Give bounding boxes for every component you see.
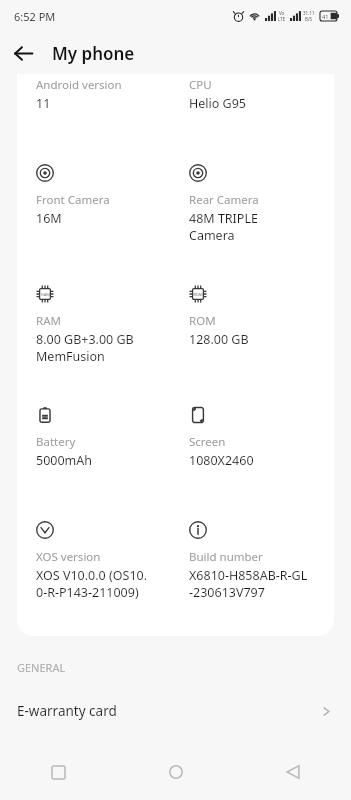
staticText: LTE [278, 16, 286, 22]
button[interactable]: ROM [189, 285, 334, 348]
button[interactable]: Rear Camera [189, 164, 334, 243]
button[interactable]: Back [8, 38, 38, 68]
staticText: 5000mAh [36, 452, 93, 469]
staticText: 48M TRIPLE Camera [189, 210, 258, 243]
staticText: 1080X2460 [189, 452, 254, 469]
staticText: 31.11 [303, 10, 315, 16]
staticText: 16M [36, 210, 62, 227]
button[interactable]: Recents [0, 744, 117, 800]
staticText: My phone [52, 42, 135, 65]
staticText: RAM [41, 292, 50, 297]
button[interactable]: Battery [36, 406, 175, 469]
staticText: XOS version [36, 549, 101, 565]
button[interactable]: Front Camera [36, 164, 175, 227]
staticText: 128.00 GB [189, 331, 249, 348]
staticText: ROM [189, 313, 216, 329]
staticText: Battery [36, 434, 76, 450]
staticText: Android version [36, 77, 122, 93]
staticText: B/S [305, 16, 313, 22]
button[interactable]: XOS version [36, 521, 175, 600]
button[interactable]: Home [117, 744, 234, 800]
button[interactable]: Back [234, 744, 351, 800]
staticText: Screen [189, 434, 226, 450]
staticText: 11 [36, 95, 51, 112]
staticText: 8.00 GB+3.00 GB MemFusion [36, 331, 134, 364]
button[interactable]: Build number [189, 521, 334, 600]
staticText: XOS V10.0.0 (OS10. 0-R-P143-211009) [36, 567, 148, 600]
staticText: CPU [189, 77, 212, 93]
button[interactable]: Screen [189, 406, 334, 469]
staticText: Helio G95 [189, 95, 246, 112]
button[interactable]: E-warranty card [0, 693, 351, 729]
staticText: ROM [193, 292, 203, 297]
staticText: Build number [189, 549, 263, 565]
staticText: Front Camera [36, 192, 110, 208]
staticText: RAM [36, 313, 61, 329]
staticText: 41 [322, 13, 329, 20]
staticText: E-warranty card [17, 702, 117, 720]
staticText: Rear Camera [189, 192, 259, 208]
staticText: GENERAL [17, 660, 66, 675]
staticText: 6:52 PM [14, 9, 56, 24]
staticText: X6810-H858AB-R-GL -230613V797 [189, 567, 308, 600]
button[interactable]: RAM [36, 285, 175, 364]
staticText: Vo [279, 10, 285, 16]
